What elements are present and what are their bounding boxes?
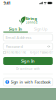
staticText: Sign Up bbox=[34, 26, 47, 31]
button[interactable]: Sign In bbox=[3, 57, 53, 65]
staticText: Sign In bbox=[9, 26, 23, 31]
staticText: Sign in with Facebook bbox=[11, 79, 51, 85]
staticText: f bbox=[6, 79, 8, 85]
staticText: Remember me bbox=[6, 51, 26, 54]
staticText: Siring bbox=[26, 16, 38, 21]
staticText: Or continue with bbox=[16, 67, 40, 71]
button[interactable]: Forgot Password? bbox=[30, 51, 53, 54]
button[interactable]: Show password bbox=[47, 45, 50, 48]
staticText: Sign In bbox=[21, 58, 35, 64]
staticText: 9:41 bbox=[3, 0, 10, 6]
button[interactable]: f bbox=[3, 78, 53, 86]
staticText: Forgot Password? bbox=[30, 51, 53, 54]
button[interactable]: Sign Up bbox=[28, 26, 53, 32]
staticText: Password bbox=[6, 44, 23, 49]
button[interactable]: Remember me bbox=[3, 51, 26, 54]
button[interactable]: Sign In bbox=[3, 26, 28, 32]
staticText: Connect bbox=[26, 21, 38, 24]
staticText: Email Address bbox=[6, 35, 32, 40]
